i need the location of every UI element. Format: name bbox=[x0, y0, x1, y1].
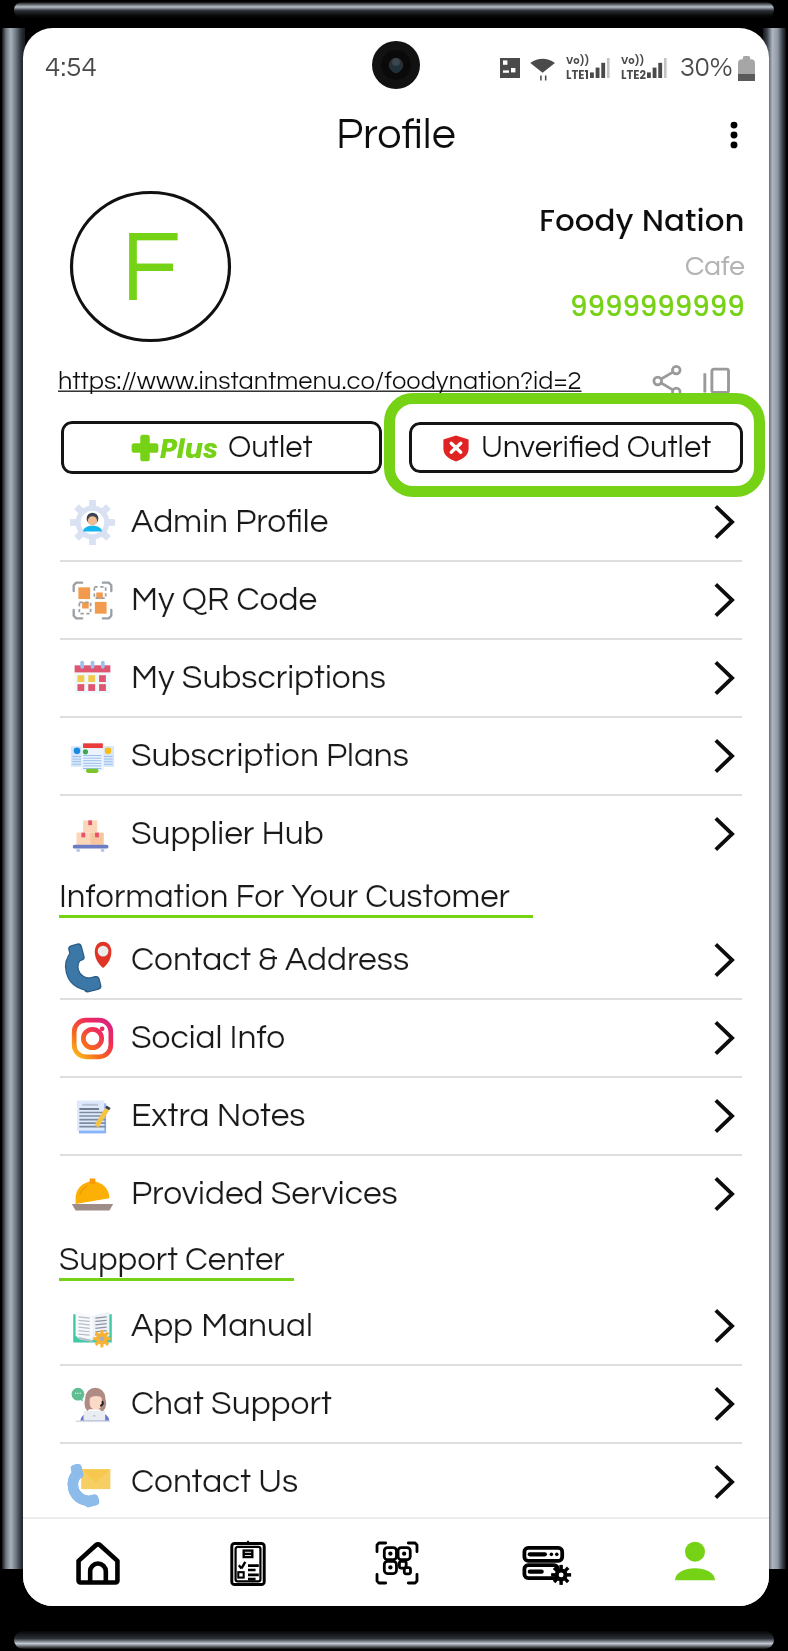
staticText: Information For Your Customer bbox=[59, 880, 510, 914]
staticText: 4:54 bbox=[45, 53, 97, 82]
button[interactable]: Contact Us bbox=[23, 1444, 769, 1522]
button[interactable]: Manage bbox=[471, 1519, 620, 1606]
staticText: 9999999999 bbox=[570, 287, 745, 325]
staticText: Plus bbox=[160, 430, 219, 468]
button[interactable]: More options bbox=[707, 108, 761, 162]
staticText: Contact Us bbox=[131, 1465, 299, 1500]
staticText: F bbox=[121, 217, 180, 321]
staticText: Subscription Plans bbox=[131, 739, 409, 774]
button[interactable]: App Manual bbox=[23, 1288, 769, 1366]
button[interactable]: Profile bbox=[620, 1519, 769, 1606]
staticText: LTE2 bbox=[621, 67, 647, 83]
button[interactable]: Social Info bbox=[23, 1000, 769, 1078]
staticText: Outlet bbox=[228, 432, 313, 464]
staticText: Foody Nation bbox=[539, 198, 745, 241]
button[interactable]: Contact & Address bbox=[23, 922, 769, 1000]
button[interactable]: Extra Notes bbox=[23, 1078, 769, 1156]
button[interactable]: Provided Services bbox=[23, 1156, 769, 1234]
button[interactable]: Orders bbox=[173, 1519, 322, 1606]
staticText: Social Info bbox=[131, 1021, 286, 1056]
staticText: App Manual bbox=[131, 1309, 313, 1344]
staticText: My Subscriptions bbox=[131, 661, 386, 696]
staticText: LTE1 bbox=[566, 67, 589, 83]
button[interactable]: Unverified Outlet bbox=[409, 422, 743, 473]
staticText: Vo)) bbox=[621, 53, 645, 67]
staticText: Admin Profile bbox=[131, 505, 329, 540]
button[interactable]: Subscription Plans bbox=[23, 718, 769, 796]
button[interactable]: Copy link bbox=[694, 358, 740, 404]
staticText: Extra Notes bbox=[131, 1099, 306, 1134]
button[interactable]: https://www.instantmenu.co/foodynation?i… bbox=[58, 368, 582, 394]
button[interactable]: Chat Support bbox=[23, 1366, 769, 1444]
staticText: Cafe bbox=[685, 252, 745, 281]
staticText: Supplier Hub bbox=[131, 817, 324, 852]
staticText: My QR Code bbox=[131, 583, 318, 618]
button[interactable]: My Subscriptions bbox=[23, 640, 769, 718]
staticText: Provided Services bbox=[131, 1177, 398, 1212]
button[interactable]: Share bbox=[644, 358, 690, 404]
staticText: Unverified Outlet bbox=[481, 432, 712, 464]
button[interactable]: Scan QR bbox=[322, 1519, 471, 1606]
staticText: Vo)) bbox=[566, 53, 590, 67]
staticText: 30% bbox=[680, 54, 733, 82]
button[interactable]: Plus bbox=[61, 421, 382, 474]
button[interactable]: Home bbox=[23, 1519, 173, 1606]
staticText: Chat Support bbox=[131, 1387, 332, 1422]
button[interactable]: Supplier Hub bbox=[23, 796, 769, 874]
button[interactable]: Admin Profile bbox=[23, 484, 769, 562]
staticText: Support Center bbox=[59, 1243, 285, 1277]
staticText: Profile bbox=[336, 113, 456, 157]
button[interactable]: My QR Code bbox=[23, 562, 769, 640]
staticText: Contact & Address bbox=[131, 943, 410, 978]
